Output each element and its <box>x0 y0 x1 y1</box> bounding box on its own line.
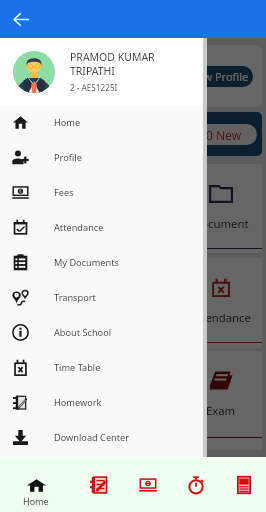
button[interactable]: Back <box>6 4 36 34</box>
staticText: Notice <box>28 216 63 231</box>
staticText: Exam <box>206 403 236 418</box>
button[interactable]: Gallery <box>91 164 174 253</box>
button[interactable]: Attendance <box>0 210 203 245</box>
staticText: Profile <box>54 151 82 164</box>
staticText: Time Table <box>54 361 101 374</box>
button[interactable]: Attendance <box>179 258 262 348</box>
staticText: Home <box>23 495 49 507</box>
staticText: About School <box>54 326 112 339</box>
staticText: Home <box>54 116 81 129</box>
button[interactable]: Result <box>91 351 174 450</box>
staticText: Homework <box>54 396 102 409</box>
button[interactable]: Download Center <box>0 420 203 455</box>
staticText: TRIPATHI <box>70 64 115 78</box>
button[interactable]: Time Table <box>0 350 203 385</box>
button[interactable]: Home <box>17 462 55 507</box>
button[interactable]: Home <box>0 105 203 140</box>
button[interactable]: Homework <box>4 258 86 348</box>
staticText: Homework <box>16 310 75 325</box>
button[interactable]: Notice <box>4 164 86 253</box>
button[interactable]: Result <box>235 468 253 502</box>
staticText: Attendance <box>54 221 104 234</box>
staticText: Fees <box>54 186 74 199</box>
button[interactable]: Time Table <box>91 258 174 348</box>
button[interactable]: Fees <box>4 351 86 450</box>
staticText: PRAMOD KUMAR <box>70 50 155 64</box>
staticText: Download Center <box>54 431 130 444</box>
button[interactable]: Profile <box>0 140 203 175</box>
staticText: Attendance <box>190 310 251 325</box>
button[interactable]: Transport <box>0 280 203 315</box>
staticText: My Documents <box>54 256 119 269</box>
button[interactable]: My Documents <box>0 245 203 280</box>
button[interactable]: Homework <box>90 468 108 502</box>
button[interactable]: About School <box>0 315 203 350</box>
button[interactable]: Fees <box>139 468 157 502</box>
button[interactable]: View Profile <box>185 66 253 87</box>
button[interactable]: Document <box>179 164 262 253</box>
staticText: Fees <box>33 403 58 418</box>
staticText: Document <box>193 216 249 231</box>
staticText: Transport <box>54 291 96 304</box>
staticText: 0 New <box>206 127 242 143</box>
button[interactable]: Homework <box>0 385 203 420</box>
button[interactable]: Fees <box>0 175 203 210</box>
staticText: 2 - AES1225I <box>70 82 118 93</box>
button[interactable]: Exam <box>179 351 262 450</box>
button[interactable]: PRAMOD KUMAR <box>0 38 203 105</box>
staticText: View Profile <box>188 69 249 84</box>
button[interactable]: Time Table <box>187 468 205 502</box>
